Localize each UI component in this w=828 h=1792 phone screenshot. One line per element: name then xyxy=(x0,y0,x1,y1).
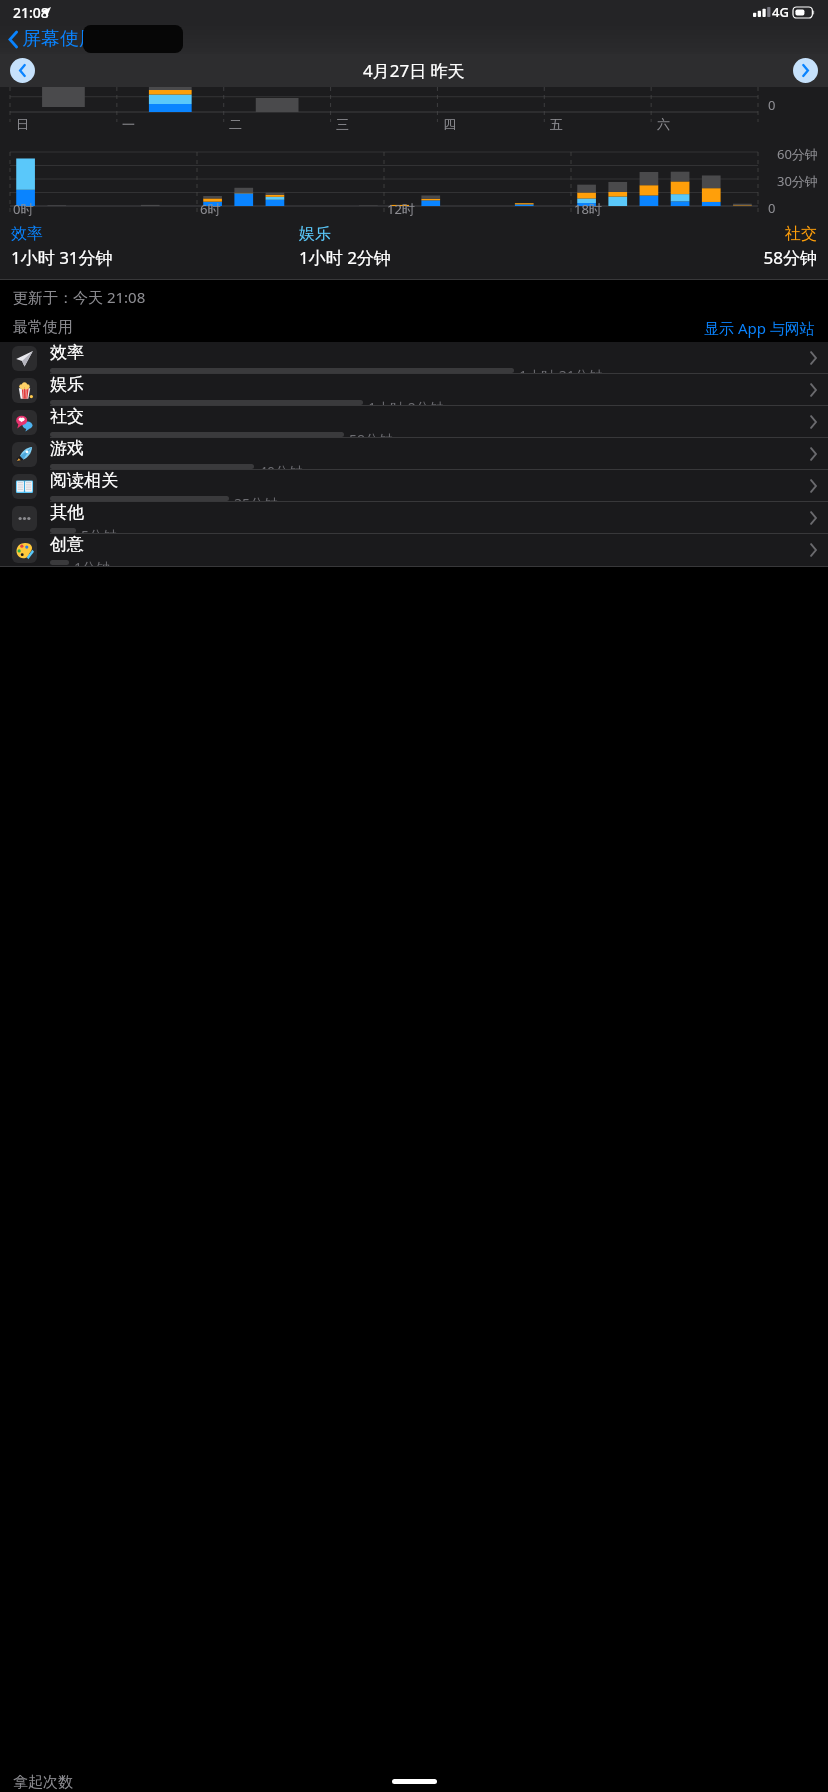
staticText: 六 xyxy=(657,116,670,132)
staticText: 效率 xyxy=(11,224,299,244)
staticText: 4G xyxy=(772,3,789,21)
button[interactable]: 社交 xyxy=(0,406,828,438)
button[interactable]: Previous day xyxy=(10,58,35,83)
staticText: 其他 xyxy=(50,502,84,523)
staticText: 一 xyxy=(122,116,135,132)
button[interactable]: 效率 xyxy=(0,342,828,374)
staticText: 1分钟 xyxy=(74,558,111,566)
staticText: 0时 xyxy=(13,200,34,218)
staticText: 四 xyxy=(443,116,456,132)
button[interactable]: 屏幕使用时间 xyxy=(6,25,139,53)
staticText: 最常使用 xyxy=(13,318,73,337)
staticText: 二 xyxy=(229,116,242,132)
staticText: 58分钟 xyxy=(349,430,394,438)
staticText: 效率 xyxy=(50,342,84,363)
staticText: 58分钟 xyxy=(587,246,817,269)
staticText: 0 xyxy=(768,199,776,217)
button[interactable]: Next day xyxy=(793,58,818,83)
button[interactable]: 显示 App 与网站 xyxy=(704,318,828,338)
staticText: 三 xyxy=(336,116,349,132)
staticText: 6时 xyxy=(200,200,221,218)
staticText: 1小时 31分钟 xyxy=(519,366,603,374)
staticText: 五 xyxy=(550,116,563,132)
button[interactable]: 阅读相关 xyxy=(0,470,828,502)
staticText: 阅读相关 xyxy=(50,470,118,491)
staticText: 12时 xyxy=(387,200,415,218)
staticText: 21:08 xyxy=(13,3,49,22)
staticText: 社交 xyxy=(587,224,817,244)
staticText: 日 xyxy=(16,116,29,132)
staticText: 1小时 2分钟 xyxy=(368,398,444,406)
staticText: 0 xyxy=(768,96,776,114)
staticText: 35分钟 xyxy=(234,494,279,502)
staticText: 娱乐 xyxy=(299,224,587,244)
staticText: 1小时 2分钟 xyxy=(299,246,587,269)
button[interactable]: 其他 xyxy=(0,502,828,534)
staticText: 5分钟 xyxy=(81,526,118,534)
staticText: 1小时 31分钟 xyxy=(11,246,299,269)
staticText: 创意 xyxy=(50,534,84,555)
staticText: 拿起次数 xyxy=(13,1773,73,1792)
staticText: 40分钟 xyxy=(259,462,304,470)
staticText: 社交 xyxy=(50,406,84,427)
staticText: 娱乐 xyxy=(50,374,84,395)
staticText: 60分钟 xyxy=(777,145,818,163)
staticText: 游戏 xyxy=(50,438,84,459)
staticText: 更新于：今天 21:08 xyxy=(13,287,146,307)
button[interactable]: 娱乐 xyxy=(0,374,828,406)
button[interactable]: 创意 xyxy=(0,534,828,566)
staticText: 4月27日 昨天 xyxy=(363,59,465,82)
staticText: 30分钟 xyxy=(777,172,818,190)
button[interactable]: 游戏 xyxy=(0,438,828,470)
staticText: 18时 xyxy=(574,200,602,218)
staticText: 屏幕使用时间 xyxy=(22,27,136,51)
